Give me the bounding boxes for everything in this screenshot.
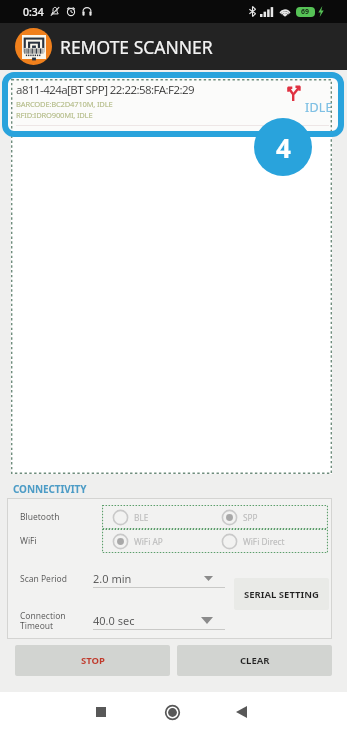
button[interactable]: Back xyxy=(218,692,264,730)
button[interactable]: 40.0 sec xyxy=(93,611,225,630)
button[interactable]: Remote Scanner logo xyxy=(15,28,52,65)
staticText: IDLE xyxy=(305,99,333,116)
button[interactable]: SPP xyxy=(221,509,332,526)
staticText: STOP xyxy=(81,654,105,667)
button[interactable]: WiFi AP xyxy=(112,533,221,550)
staticText: BLE xyxy=(134,512,149,523)
staticText: Scan Period xyxy=(20,573,93,585)
staticText: RFID:IDRO900MI, IDLE xyxy=(16,110,93,120)
staticText: WiFi Direct xyxy=(243,536,285,547)
staticText: WiFi xyxy=(20,535,112,547)
staticText: 2.0 min xyxy=(93,571,132,586)
staticText: SERIAL SETTING xyxy=(244,588,319,601)
button[interactable]: WiFi Direct xyxy=(221,533,332,550)
button[interactable]: SERIAL SETTING xyxy=(234,578,329,610)
staticText: Connection Timeout xyxy=(20,610,93,631)
button[interactable]: Recents xyxy=(78,692,124,730)
button[interactable]: CLEAR xyxy=(177,645,332,676)
button[interactable]: 2.0 min xyxy=(93,569,225,588)
button[interactable]: Home xyxy=(149,692,195,730)
staticText: 40.0 sec xyxy=(93,613,135,628)
button[interactable]: BLE xyxy=(112,509,221,526)
staticText: SPP xyxy=(243,512,258,523)
button[interactable]: 4 devices xyxy=(254,118,312,176)
staticText: BARCODE:BC2D4710M, IDLE xyxy=(16,99,113,109)
staticText: REMOTE SCANNER xyxy=(60,35,213,59)
staticText: CONNECTIVITY xyxy=(13,482,87,496)
staticText: CLEAR xyxy=(240,654,270,667)
button[interactable]: a811-424a[BT SPP] 22:22:58:FA:F2:29 xyxy=(8,77,338,132)
staticText: 4 xyxy=(276,130,291,165)
staticText: 69 xyxy=(301,7,310,17)
staticText: WiFi AP xyxy=(134,536,163,547)
staticText: 0:34 xyxy=(23,5,44,19)
staticText: Bluetooth xyxy=(20,511,112,523)
staticText: a811-424a[BT SPP] 22:22:58:FA:F2:29 xyxy=(16,82,195,98)
button[interactable]: STOP xyxy=(15,645,170,676)
